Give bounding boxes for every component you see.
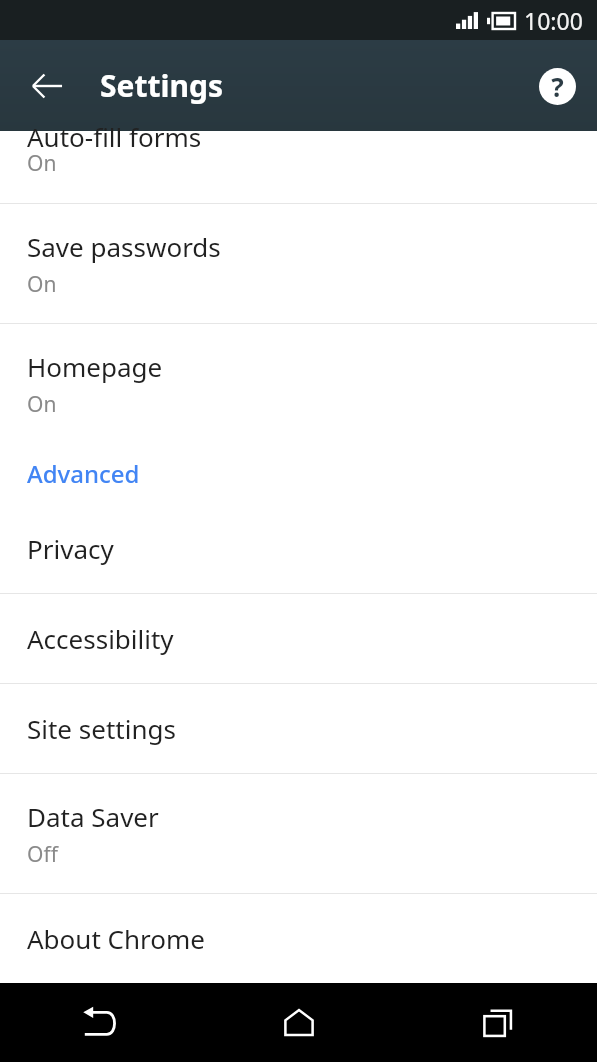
- button[interactable]: Homepage: [0, 324, 597, 443]
- button[interactable]: Save passwords: [0, 204, 597, 323]
- button[interactable]: Privacy: [0, 503, 597, 593]
- staticText: Settings: [100, 65, 223, 106]
- staticText: ?: [551, 69, 564, 104]
- staticText: Homepage: [27, 349, 163, 384]
- button[interactable]: Accessibility: [0, 594, 597, 683]
- button[interactable]: Recent apps: [398, 983, 597, 1062]
- staticText: About Chrome: [27, 921, 205, 956]
- button[interactable]: Data Saver: [0, 774, 597, 893]
- staticText: Site settings: [27, 711, 176, 746]
- staticText: Auto-fill forms: [27, 119, 202, 154]
- staticText: Advanced: [27, 457, 140, 490]
- button[interactable]: About Chrome: [0, 894, 597, 983]
- button[interactable]: Back: [0, 983, 199, 1062]
- staticText: Off: [27, 840, 58, 869]
- staticText: Privacy: [27, 531, 114, 566]
- button[interactable]: Back: [14, 53, 80, 119]
- staticText: On: [27, 270, 57, 299]
- button[interactable]: Site settings: [0, 684, 597, 773]
- staticText: On: [27, 149, 57, 178]
- staticText: Save passwords: [27, 229, 221, 264]
- staticText: Data Saver: [27, 799, 159, 834]
- staticText: 10:00: [524, 5, 583, 36]
- button[interactable]: Home: [199, 983, 398, 1062]
- button[interactable]: Help: [527, 56, 587, 116]
- staticText: Accessibility: [27, 621, 174, 656]
- staticText: On: [27, 390, 57, 419]
